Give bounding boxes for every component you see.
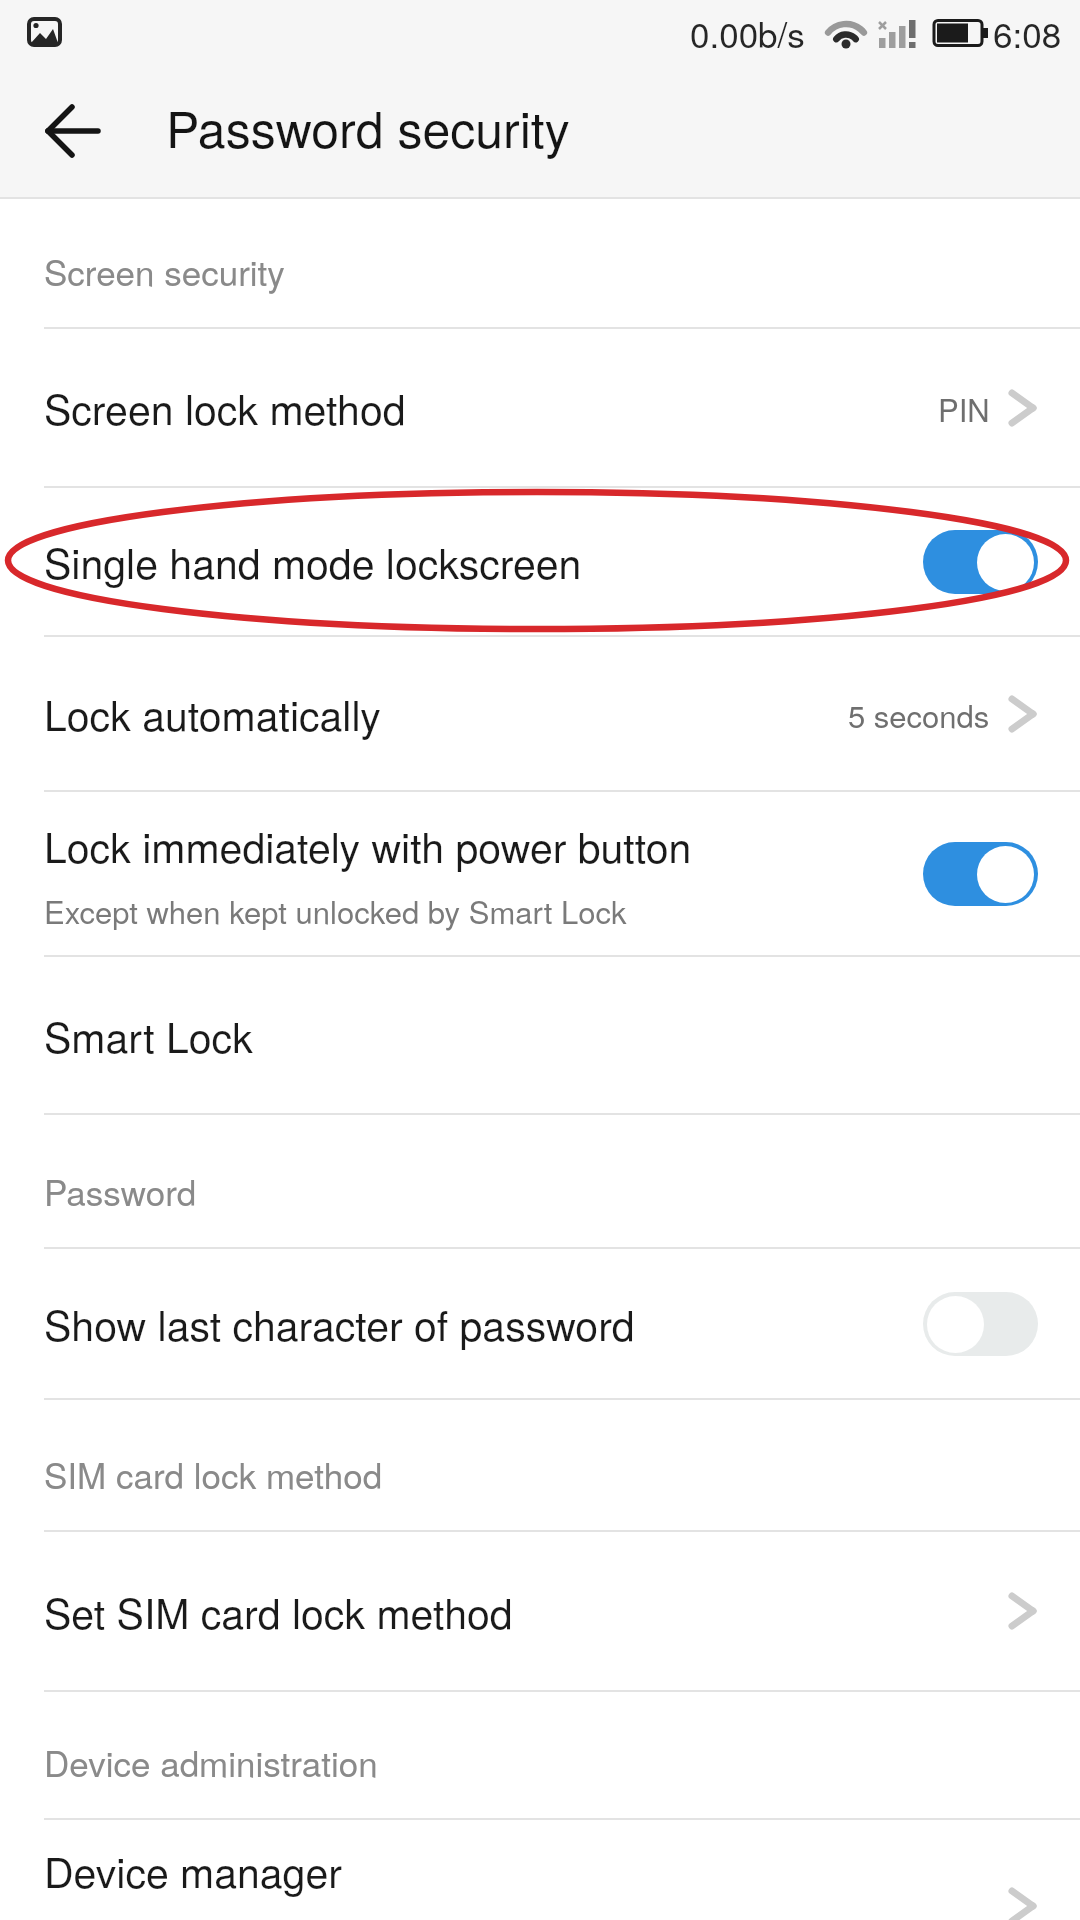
button[interactable]: Device manager <box>0 1820 1080 1920</box>
staticText: Single hand mode lockscreen <box>44 532 582 591</box>
staticText: SIM card lock method <box>44 1449 383 1499</box>
staticText: Lock automatically <box>44 684 381 743</box>
button[interactable]: Single hand mode lockscreen <box>0 488 1080 635</box>
staticText: Password <box>44 1166 197 1216</box>
button[interactable]: Lock immediately with power button <box>0 792 1080 955</box>
button[interactable] <box>923 842 1038 906</box>
button[interactable] <box>923 530 1038 594</box>
staticText: PIN <box>938 386 990 430</box>
button[interactable]: Set SIM card lock method <box>0 1532 1080 1690</box>
button[interactable]: Show last character of password <box>0 1249 1080 1398</box>
staticText: Screen lock method <box>44 378 406 437</box>
button[interactable] <box>46 106 100 156</box>
button[interactable]: Screen lock method <box>0 329 1080 486</box>
staticText: Lock immediately with power button <box>44 816 692 875</box>
staticText: 0.00b/s <box>690 8 805 58</box>
staticText: Show last character of password <box>44 1294 635 1353</box>
staticText: 5 seconds <box>848 692 990 736</box>
button[interactable] <box>923 1292 1038 1356</box>
staticText: Screen security <box>44 246 285 296</box>
staticText: Device manager <box>44 1841 342 1900</box>
staticText: Device administration <box>44 1737 378 1787</box>
staticText: Smart Lock <box>44 1006 253 1065</box>
staticText: Set SIM card lock method <box>44 1582 513 1641</box>
button[interactable]: Lock automatically <box>0 637 1080 790</box>
staticText: Password security <box>166 91 570 163</box>
button[interactable]: Smart Lock <box>0 957 1080 1113</box>
staticText: Except when kept unlocked by Smart Lock <box>44 888 627 932</box>
staticText: 6:08 <box>993 8 1062 58</box>
